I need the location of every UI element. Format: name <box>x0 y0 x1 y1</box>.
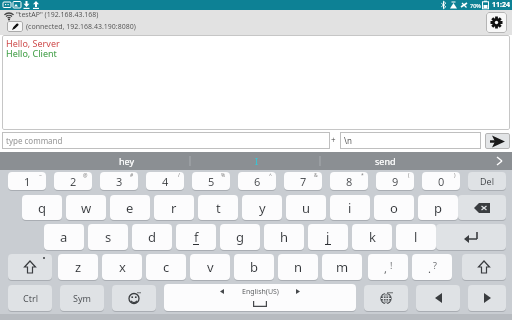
button[interactable]: 5 <box>192 172 230 190</box>
button[interactable]: c <box>146 254 186 280</box>
button[interactable]: d <box>132 224 172 250</box>
button[interactable]: v <box>190 254 230 280</box>
staticText: v <box>207 258 214 276</box>
button[interactable]: q <box>22 195 62 220</box>
staticText: "testAP" (192.168.43.168) <box>16 10 99 20</box>
staticText: q <box>38 199 46 217</box>
staticText: 2 <box>70 174 77 189</box>
button[interactable]: hey <box>95 152 159 170</box>
button[interactable]: Ctrl <box>8 285 52 311</box>
button[interactable] <box>112 285 156 311</box>
staticText: English(US) <box>242 287 279 297</box>
staticText: ~ <box>39 172 42 179</box>
staticText: ? <box>433 259 437 271</box>
button[interactable]: r <box>154 195 194 220</box>
staticText: 5 <box>208 174 215 189</box>
button[interactable]: 2 <box>54 172 92 190</box>
button[interactable]: I <box>235 152 279 170</box>
staticText: Hello, Client <box>6 47 57 58</box>
staticText: f <box>194 228 199 246</box>
button[interactable]: u <box>286 195 326 220</box>
button[interactable]: 0 <box>422 172 460 190</box>
button[interactable]: 8 <box>330 172 368 190</box>
button[interactable]: 9 <box>376 172 414 190</box>
staticText: ! <box>390 259 393 271</box>
button[interactable]: k <box>352 224 392 250</box>
button[interactable]: Sym <box>60 285 104 311</box>
staticText: hey <box>119 155 135 167</box>
button[interactable]: 3 <box>100 172 138 190</box>
staticText: type command <box>6 135 63 146</box>
button[interactable]: 1 <box>8 172 46 190</box>
button[interactable]: t <box>198 195 238 220</box>
staticText: 11:24 <box>492 0 510 10</box>
button[interactable]: z <box>58 254 98 280</box>
staticText: p <box>434 199 442 217</box>
staticText: / <box>178 172 180 179</box>
staticText: e <box>126 199 134 217</box>
button[interactable]: p <box>418 195 458 220</box>
staticText: Ctrl <box>23 292 38 304</box>
button[interactable]: 6 <box>238 172 276 190</box>
button[interactable]: j <box>308 224 348 250</box>
button[interactable]: y <box>242 195 282 220</box>
button[interactable]: e <box>110 195 150 220</box>
button[interactable] <box>364 285 408 311</box>
staticText: & <box>314 172 318 179</box>
staticText: \n <box>344 135 352 146</box>
button[interactable] <box>458 195 506 220</box>
staticText: ( <box>408 172 410 179</box>
button[interactable]: x <box>102 254 142 280</box>
button[interactable]: g <box>220 224 260 250</box>
button[interactable]: l <box>396 224 436 250</box>
button[interactable]: . <box>412 254 452 280</box>
button[interactable]: o <box>374 195 414 220</box>
staticText: 6 <box>254 174 261 189</box>
staticText: i <box>348 199 352 217</box>
button[interactable]: h <box>264 224 304 250</box>
staticText: , <box>384 261 387 276</box>
button[interactable] <box>462 254 506 280</box>
staticText: l <box>414 228 418 246</box>
button[interactable]: "testAP" (192.168.43.168) <box>16 11 316 21</box>
staticText: @ <box>83 172 88 179</box>
staticText: c <box>163 258 170 276</box>
staticText: o <box>390 199 398 217</box>
staticText: # <box>130 172 134 179</box>
staticText: s <box>105 228 112 246</box>
staticText: 1 <box>24 174 31 189</box>
staticText: g <box>236 228 244 246</box>
staticText: k <box>369 228 376 246</box>
staticText: 9 <box>392 174 399 189</box>
button[interactable]: m <box>322 254 362 280</box>
button[interactable]: type command <box>2 132 330 149</box>
button[interactable]: b <box>234 254 274 280</box>
button[interactable] <box>436 224 506 250</box>
staticText: m <box>336 258 349 276</box>
button[interactable]: 4 <box>146 172 184 190</box>
button[interactable]: 7 <box>284 172 322 190</box>
button[interactable]: a <box>44 224 84 250</box>
button[interactable]: f <box>176 224 216 250</box>
staticText: w <box>81 199 92 217</box>
button[interactable]: i <box>330 195 370 220</box>
button[interactable] <box>8 254 52 280</box>
button[interactable]: n <box>278 254 318 280</box>
button[interactable] <box>468 285 506 311</box>
button[interactable] <box>416 285 460 311</box>
button[interactable]: Del <box>468 172 506 190</box>
staticText: * <box>361 172 364 179</box>
button[interactable]: English(US) <box>164 284 356 311</box>
staticText: ^ <box>269 172 272 179</box>
button[interactable]: w <box>66 195 106 220</box>
staticText: Del <box>480 175 494 187</box>
staticText: r <box>171 199 177 217</box>
button[interactable] <box>486 12 507 33</box>
staticText: 8 <box>346 174 353 189</box>
button[interactable] <box>485 133 510 149</box>
button[interactable]: , <box>368 254 408 280</box>
button[interactable]: send <box>360 152 410 170</box>
button[interactable]: s <box>88 224 128 250</box>
button[interactable]: \n <box>340 132 481 149</box>
button[interactable] <box>7 21 23 32</box>
